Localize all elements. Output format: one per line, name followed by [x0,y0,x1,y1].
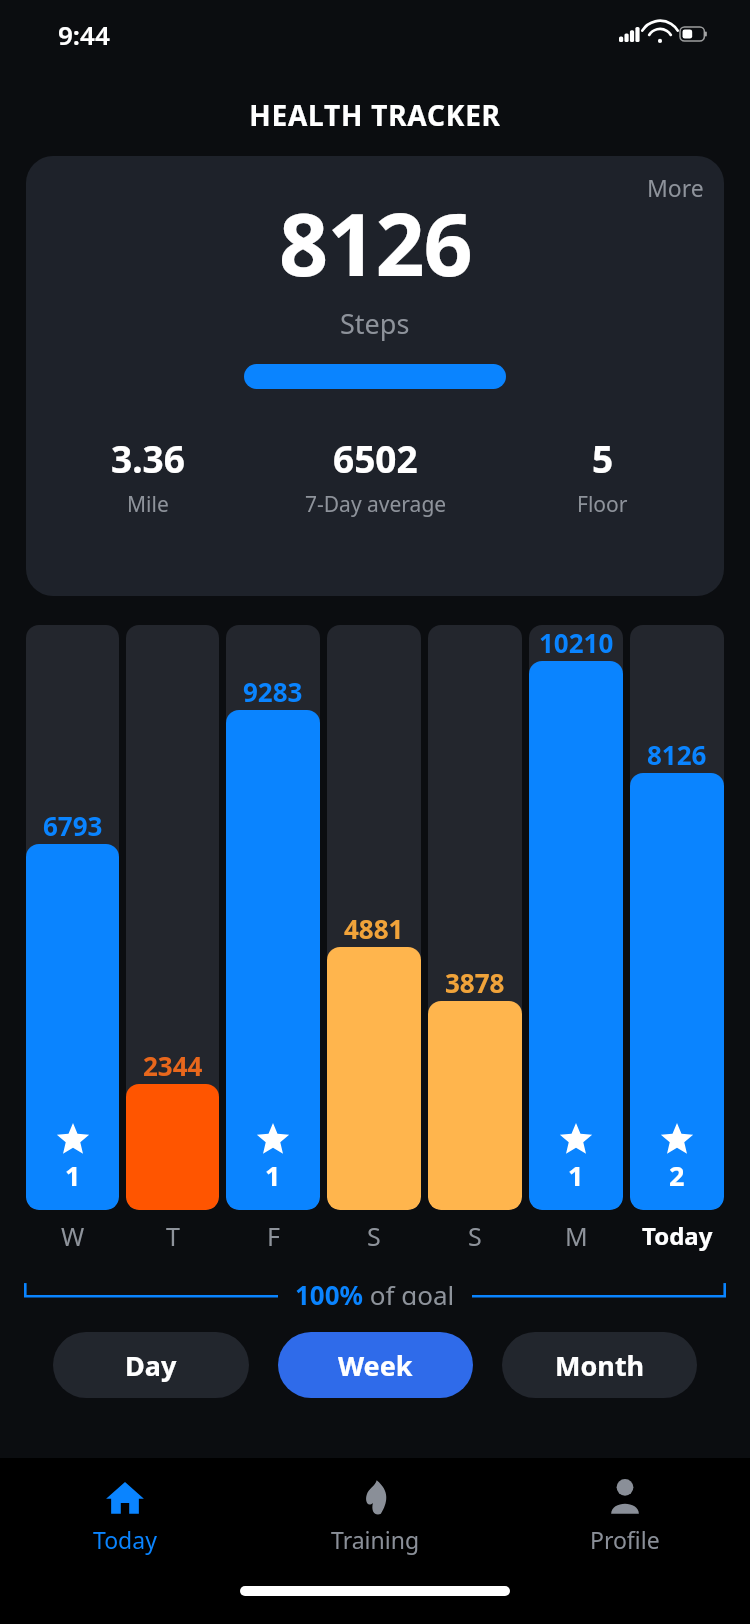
staticText: Profile [590,1524,660,1555]
staticText: 9283 [243,674,303,709]
button[interactable]: 2 [630,625,724,1210]
staticText: Floor [577,490,628,519]
staticText: M [565,1219,588,1253]
button[interactable]: Profile [500,1476,750,1555]
staticText: Mile [127,490,169,519]
staticText: 10210 [539,625,614,660]
button[interactable]: 3.36 [34,433,262,519]
staticText: 3.36 [111,433,185,483]
staticText: 9:44 [58,17,110,52]
staticText: 8126 [279,184,472,301]
staticText: 1 [65,1157,81,1194]
staticText: Week [338,1347,413,1384]
button[interactable]: 1 [26,625,119,1210]
staticText: W [61,1219,85,1253]
staticText: 1 [265,1157,281,1194]
button[interactable]: 2344 [126,625,219,1210]
staticText: Today [642,1219,713,1252]
button[interactable]: 6502 [262,433,489,519]
staticText: 1 [568,1157,584,1194]
button[interactable]: More [627,156,724,219]
staticText: Training [331,1524,420,1555]
staticText: 4881 [344,911,404,946]
button[interactable]: 5 [489,433,716,519]
staticText: S [367,1219,381,1253]
button[interactable]: Day [53,1332,249,1398]
staticText: 6793 [43,808,103,843]
staticText: 8126 [647,737,707,772]
staticText: 5 [592,433,614,483]
staticText: Month [555,1347,645,1384]
button[interactable]: Week [278,1332,473,1398]
staticText: 3878 [445,965,505,1000]
button[interactable]: More [26,156,724,596]
staticText: 100% of goal [295,1277,455,1305]
staticText: S [468,1219,482,1253]
staticText: T [166,1219,180,1253]
staticText: Day [125,1347,177,1384]
staticText: HEALTH TRACKER [0,96,750,134]
button[interactable]: 3878 [428,625,522,1210]
staticText: 7-Day average [305,490,447,519]
button[interactable]: Training [250,1476,500,1555]
button[interactable]: 1 [529,625,623,1210]
staticText: 2 [669,1157,685,1194]
button[interactable]: 1 [226,625,320,1210]
button[interactable]: 4881 [327,625,421,1210]
button[interactable]: Month [502,1332,697,1398]
staticText: Steps [340,305,410,342]
staticText: 2344 [143,1048,203,1083]
staticText: Today [93,1524,157,1555]
staticText: F [267,1219,280,1253]
staticText: 6502 [333,433,418,483]
button[interactable]: Today [0,1476,250,1555]
